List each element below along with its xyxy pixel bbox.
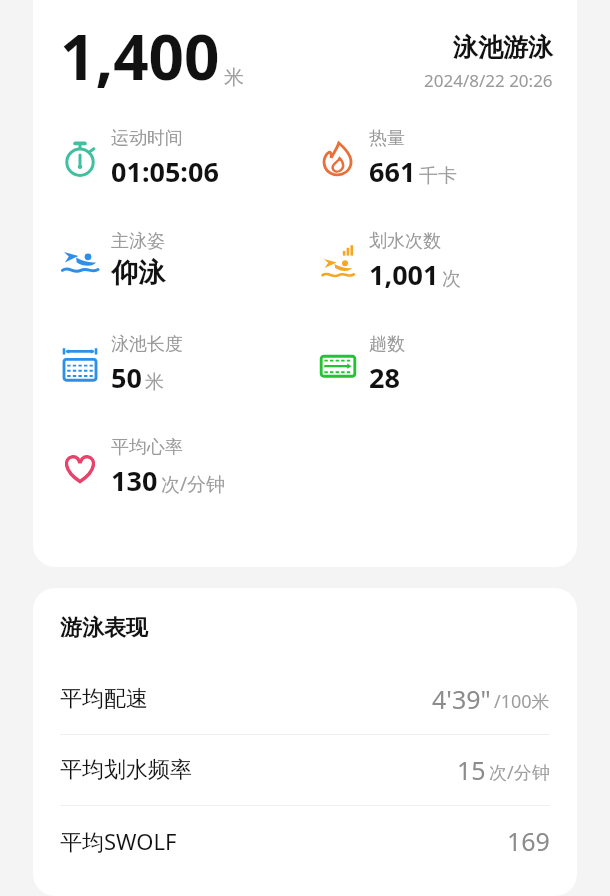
button[interactable]: Pool length	[57, 333, 183, 396]
staticText: 15	[457, 753, 486, 787]
staticText: 169	[507, 824, 550, 858]
staticText: 28	[369, 359, 400, 396]
staticText: 次/分钟	[489, 760, 550, 785]
staticText: /100米	[494, 689, 550, 714]
staticText: 主泳姿	[111, 230, 165, 253]
other: Stroke type	[60, 240, 100, 280]
button[interactable]: Duration	[57, 127, 219, 190]
staticText: 2024/8/22 20:26	[424, 69, 553, 92]
staticText: 01:05:06	[111, 153, 219, 190]
button[interactable]: Stroke type	[57, 230, 165, 290]
other: Average heart rate	[60, 448, 100, 488]
staticText: 平均划水频率	[60, 756, 192, 784]
button[interactable]: Calories	[315, 127, 457, 190]
staticText: 泳池长度	[111, 333, 183, 356]
staticText: 划水次数	[369, 230, 441, 253]
staticText: 千卡	[419, 164, 457, 188]
staticText: 平均SWOLF	[60, 826, 177, 856]
staticText: 趟数	[369, 333, 405, 356]
button[interactable]: Laps	[315, 333, 405, 396]
button[interactable]: 平均划水频率	[33, 735, 577, 805]
staticText: 仰泳	[111, 256, 165, 290]
button[interactable]: 平均配速	[33, 664, 577, 734]
other: Laps	[318, 345, 358, 385]
button[interactable]: 平均SWOLF	[33, 806, 577, 876]
staticText: 米	[145, 370, 164, 394]
staticText: 次	[442, 267, 461, 291]
other: Stroke count	[318, 242, 358, 282]
staticText: 50	[111, 359, 142, 396]
button[interactable]: Stroke count	[315, 230, 461, 293]
staticText: 661	[369, 153, 416, 190]
staticText: 米	[224, 65, 244, 90]
staticText: 运动时间	[111, 127, 183, 150]
staticText: 游泳表现	[60, 614, 148, 642]
other: Calories	[318, 139, 358, 179]
other: Duration	[60, 139, 100, 179]
staticText: 平均配速	[60, 685, 148, 713]
other: Pool length	[60, 345, 100, 385]
staticText: 1,001	[369, 256, 439, 293]
staticText: 次/分钟	[161, 471, 226, 497]
staticText: 130	[111, 462, 158, 499]
staticText: 泳池游泳	[453, 32, 553, 63]
staticText: 平均心率	[111, 436, 183, 459]
staticText: 热量	[369, 127, 405, 150]
staticText: 4'39"	[432, 682, 491, 716]
button[interactable]: Average heart rate	[57, 436, 226, 499]
staticText: 1,400	[60, 14, 220, 98]
